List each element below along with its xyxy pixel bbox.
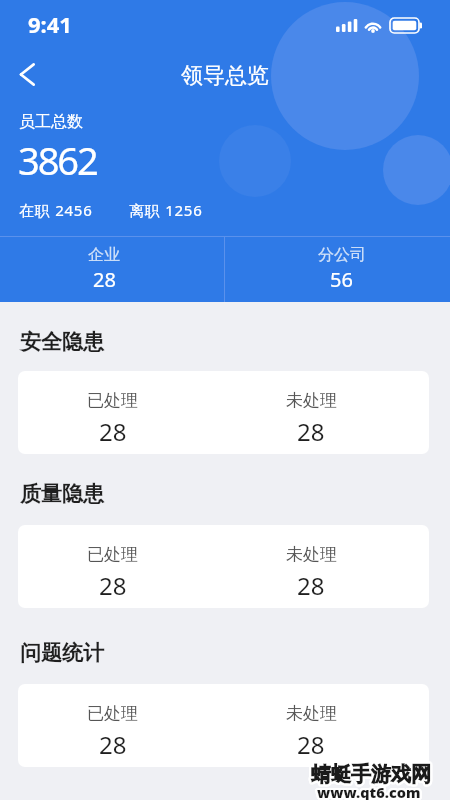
staticText: 蜻蜓手游戏网 <box>312 763 432 788</box>
staticText: www.qt6.com <box>317 780 421 800</box>
staticText: www.qt6.com <box>315 783 419 800</box>
staticText: 28 <box>99 415 127 448</box>
staticText: www.qt6.com <box>317 784 421 800</box>
staticText: www.qt6.com <box>316 781 420 800</box>
staticText: 蜻蜓手游戏网 <box>312 764 432 789</box>
staticText: www.qt6.com <box>318 780 422 800</box>
button[interactable]: 已处理 <box>18 684 207 767</box>
button[interactable]: 分公司 <box>225 237 450 302</box>
staticText: 问题统计 <box>20 640 104 666</box>
staticText: www.qt6.com <box>316 784 420 800</box>
staticText: 已处理 <box>87 544 138 565</box>
staticText: 未处理 <box>286 390 337 411</box>
button[interactable]: 未处理 <box>207 525 415 608</box>
staticText: 蜻蜓手游戏网 <box>312 761 432 786</box>
staticText: 蜻蜓手游戏网 <box>312 762 432 787</box>
staticText: www.qt6.com <box>319 782 423 800</box>
staticText: www.qt6.com <box>316 780 420 800</box>
staticText: 未处理 <box>286 544 337 565</box>
staticText: 3862 <box>18 134 97 186</box>
staticText: 蜻蜓手游戏网 <box>310 762 430 787</box>
staticText: 蜻蜓手游戏网 <box>313 761 433 786</box>
staticText: www.qt6.com <box>317 782 421 800</box>
staticText: 28 <box>297 415 325 448</box>
staticText: 未处理 <box>286 703 337 724</box>
staticText: 安全隐患 <box>20 329 104 355</box>
staticText: 已处理 <box>87 390 138 411</box>
staticText: 28 <box>99 569 127 602</box>
staticText: www.qt6.com <box>316 783 420 800</box>
button[interactable]: 未处理 <box>207 371 415 454</box>
staticText: www.qt6.com <box>316 782 420 800</box>
staticText: 28 <box>93 266 116 293</box>
staticText: 56 <box>330 266 353 293</box>
staticText: 蜻蜓手游戏网 <box>310 763 430 788</box>
button[interactable]: 已处理 <box>18 371 429 454</box>
staticText: www.qt6.com <box>318 784 422 800</box>
staticText: www.qt6.com <box>315 781 419 800</box>
staticText: 离职 1256 <box>129 200 203 220</box>
staticText: 蜻蜓手游戏网 <box>309 763 429 788</box>
staticText: www.qt6.com <box>317 781 421 800</box>
staticText: 领导总览 <box>181 62 269 90</box>
button[interactable]: 已处理 <box>18 684 429 767</box>
staticText: 蜻蜓手游戏网 <box>310 760 430 785</box>
staticText: 蜻蜓手游戏网 <box>311 762 431 787</box>
staticText: 蜻蜓手游戏网 <box>310 761 430 786</box>
staticText: 蜻蜓手游戏网 <box>311 764 431 789</box>
staticText: www.qt6.com <box>319 781 423 800</box>
staticText: www.qt6.com <box>318 781 422 800</box>
staticText: www.qt6.com <box>315 782 419 800</box>
button[interactable]: 企业 <box>0 237 224 302</box>
staticText: 28 <box>297 569 325 602</box>
staticText: www.qt6.com <box>319 783 423 800</box>
staticText: 9:41 <box>28 9 72 39</box>
button[interactable]: 已处理 <box>18 525 429 608</box>
staticText: 企业 <box>88 245 120 265</box>
staticText: 员工总数 <box>19 112 83 132</box>
button[interactable]: 未处理 <box>207 684 415 767</box>
staticText: www.qt6.com <box>318 782 422 800</box>
button[interactable]: 已处理 <box>18 525 207 608</box>
staticText: 在职 2456 <box>19 200 93 220</box>
staticText: 蜻蜓手游戏网 <box>311 761 431 786</box>
staticText: 质量隐患 <box>20 481 104 507</box>
staticText: 蜻蜓手游戏网 <box>312 760 432 785</box>
button[interactable]: Back <box>6 53 48 95</box>
staticText: 分公司 <box>318 245 366 265</box>
staticText: 28 <box>297 728 325 761</box>
staticText: 28 <box>99 728 127 761</box>
staticText: 蜻蜓手游戏网 <box>309 761 429 786</box>
staticText: 蜻蜓手游戏网 <box>313 762 433 787</box>
staticText: 蜻蜓手游戏网 <box>311 760 431 785</box>
staticText: 蜻蜓手游戏网 <box>309 762 429 787</box>
staticText: 蜻蜓手游戏网 <box>313 763 433 788</box>
button[interactable]: 已处理 <box>18 371 207 454</box>
staticText: 蜻蜓手游戏网 <box>311 763 431 788</box>
staticText: 蜻蜓手游戏网 <box>310 764 430 789</box>
staticText: www.qt6.com <box>318 783 422 800</box>
staticText: 已处理 <box>87 703 138 724</box>
staticText: www.qt6.com <box>317 783 421 800</box>
